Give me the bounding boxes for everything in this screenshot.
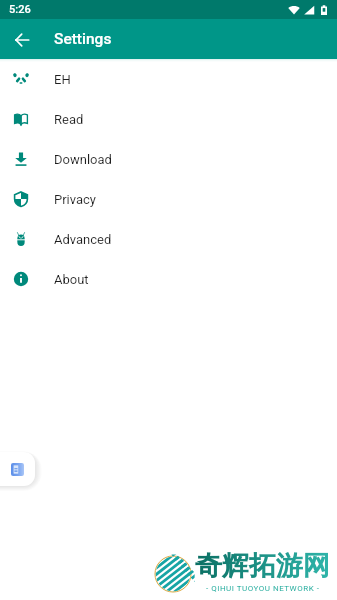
button[interactable]: About — [0, 259, 337, 299]
staticText: About — [54, 272, 89, 287]
button[interactable]: Open reading list — [0, 452, 35, 486]
button[interactable]: Advanced — [0, 219, 337, 259]
staticText: Download — [54, 152, 112, 167]
button[interactable]: Read — [0, 99, 337, 139]
staticText: Advanced — [54, 232, 112, 247]
button[interactable]: Back — [5, 23, 38, 56]
staticText: 5:26 — [9, 3, 31, 16]
staticText: - QIHUI TUOYOU NETWORK - — [206, 584, 320, 593]
button[interactable]: Download — [0, 139, 337, 179]
staticText: Privacy — [54, 192, 96, 207]
button[interactable]: Privacy — [0, 179, 337, 219]
staticText: EH — [54, 72, 71, 87]
staticText: Settings — [54, 30, 112, 48]
staticText: 奇辉拓游网 — [195, 549, 330, 583]
staticText: Read — [54, 112, 84, 127]
button[interactable]: EH — [0, 59, 337, 99]
